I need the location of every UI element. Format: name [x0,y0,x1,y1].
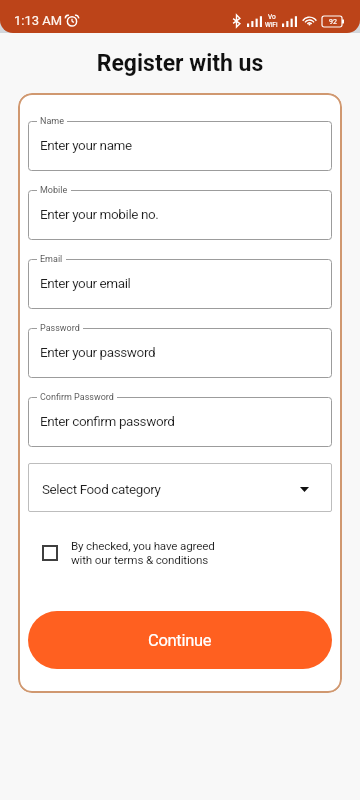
button[interactable]: Email [28,253,332,309]
staticText: Register with us [0,50,360,77]
staticText: Continue [148,631,212,650]
button[interactable]: By checked, you have agreed with our ter… [42,539,215,567]
button[interactable]: Confirm Password [28,391,332,447]
button[interactable]: Password [28,322,332,378]
staticText: WiFi [265,21,278,29]
staticText: Enter your name [40,137,132,153]
staticText: Vo [268,13,276,21]
staticText: Enter your mobile no. [40,206,159,222]
staticText: Enter your email [40,275,131,291]
button[interactable]: Continue [28,611,332,669]
staticText: By checked, you have agreed with our ter… [71,539,215,567]
staticText: Mobile [40,185,68,196]
button[interactable]: Select Food category [28,463,332,512]
staticText: Enter your password [40,344,156,360]
staticText: Name [40,116,64,127]
staticText: 92 [329,18,337,26]
button[interactable]: Name [28,115,332,171]
staticText: Enter confirm password [40,413,175,429]
staticText: Password [40,323,80,334]
staticText: 1:13 AM [14,13,63,28]
staticText: Confirm Password [40,392,114,403]
staticText: Email [40,254,63,265]
staticText: Select Food category [42,481,161,497]
button[interactable]: Mobile [28,184,332,240]
